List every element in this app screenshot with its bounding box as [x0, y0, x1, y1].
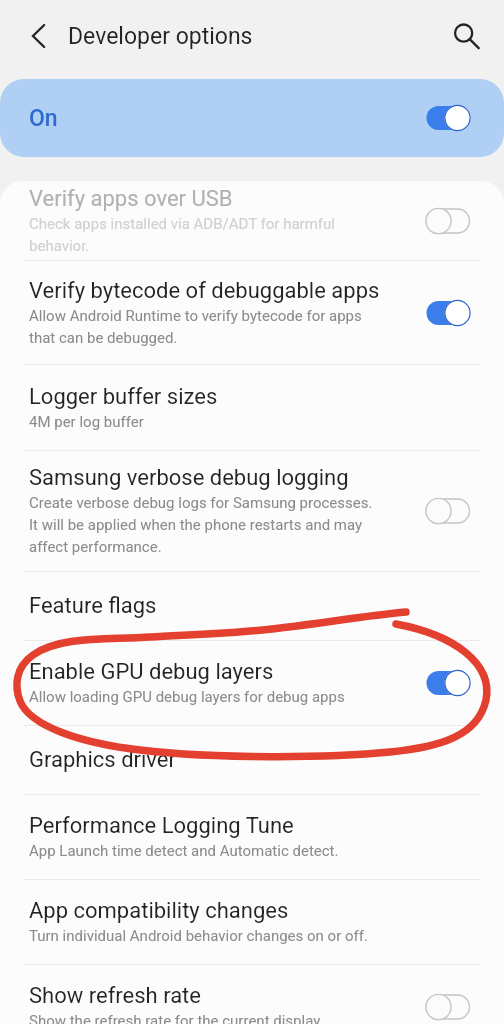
staticText: Check apps installed via ADB/ADT for har…	[29, 212, 377, 256]
other: Highlight annotation	[0, 0, 504, 1024]
staticText: Create verbose debug logs for Samsung pr…	[29, 491, 377, 557]
staticText: Verify bytecode of debuggable apps	[29, 277, 397, 304]
button[interactable]: On	[0, 79, 504, 157]
button[interactable]: Show refresh rate	[0, 965, 504, 1024]
staticText: Show the refresh rate for the current di…	[29, 1009, 324, 1024]
staticText: Developer options	[68, 23, 253, 50]
staticText: Samsung verbose debug logging	[29, 464, 397, 491]
button[interactable]: Feature flags	[0, 572, 504, 640]
staticText: Logger buffer sizes	[29, 383, 397, 410]
staticText: On	[29, 105, 58, 132]
staticText: App compatibility changes	[29, 897, 397, 924]
button[interactable]: App compatibility changes	[0, 880, 504, 964]
staticText: Verify apps over USB	[29, 185, 397, 212]
button[interactable]: Navigate up	[9, 8, 65, 64]
button[interactable]: Enable GPU debug layers	[0, 641, 504, 725]
staticText: 4M per log buffer	[29, 410, 144, 432]
button[interactable]: Performance Logging Tune	[0, 795, 504, 879]
staticText: Graphics driver	[29, 746, 397, 773]
button[interactable]: Graphics driver	[0, 726, 504, 794]
button[interactable]: Search	[439, 9, 495, 65]
staticText: Show refresh rate	[29, 982, 397, 1009]
button[interactable]: Verify bytecode of debuggable apps	[0, 261, 504, 364]
staticText: Allow loading GPU debug layers for debug…	[29, 685, 345, 707]
staticText: Enable GPU debug layers	[29, 658, 397, 685]
staticText: App Launch time detect and Automatic det…	[29, 839, 339, 861]
staticText: Turn individual Android behavior changes…	[29, 924, 368, 946]
button[interactable]: Verify apps over USB	[0, 181, 504, 260]
button[interactable]: Logger buffer sizes	[0, 365, 504, 450]
staticText: Feature flags	[29, 592, 397, 619]
staticText: Allow Android Runtime to verify bytecode…	[29, 304, 377, 348]
staticText: Performance Logging Tune	[29, 812, 397, 839]
button[interactable]: Samsung verbose debug logging	[0, 451, 504, 571]
